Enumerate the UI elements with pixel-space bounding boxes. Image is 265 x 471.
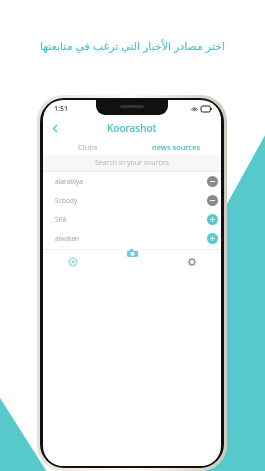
button[interactable]: Remove source: [207, 176, 218, 187]
staticText: Search in your sources: [95, 158, 170, 168]
button[interactable]: Sr.body: [43, 191, 221, 210]
button[interactable]: Back: [47, 120, 63, 136]
staticText: news sources: [152, 142, 201, 152]
button[interactable]: Add source: [207, 233, 218, 244]
button[interactable]: SPA: [43, 210, 221, 229]
staticText: Clubs: [78, 142, 98, 152]
button[interactable]: Settings: [162, 249, 221, 275]
staticText: 1:51: [54, 104, 68, 114]
button[interactable]: news sources: [132, 138, 221, 155]
button[interactable]: Camera: [121, 242, 143, 264]
button[interactable]: Search in your sources: [43, 155, 221, 171]
button[interactable]: Remove source: [207, 195, 218, 206]
staticText: SPA: [55, 215, 67, 224]
button[interactable]: Add source: [207, 214, 218, 225]
button[interactable]: Clubs: [43, 138, 132, 155]
staticText: Sr.body: [55, 196, 78, 205]
staticText: alwatan: [55, 234, 80, 243]
staticText: Koorashot: [107, 121, 157, 135]
staticText: اختر مصادر الأخبار التي ترغب في متابعتها: [12, 38, 253, 53]
staticText: alarabiya: [55, 177, 83, 186]
button[interactable]: alwatan: [43, 229, 221, 248]
button[interactable]: alarabiya: [43, 172, 221, 191]
button[interactable]: Teams: [43, 249, 103, 275]
